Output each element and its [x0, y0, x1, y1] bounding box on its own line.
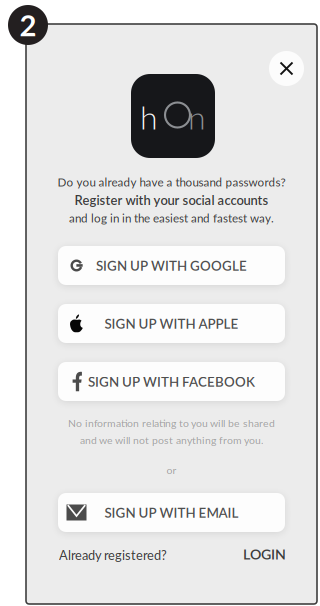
staticText: and we will not post anything from you.	[80, 434, 263, 446]
button[interactable]: SIGN UP WITH FACEBOOK	[58, 362, 285, 401]
staticText: h	[140, 98, 158, 136]
button[interactable]: Already registered?	[59, 546, 179, 564]
staticText: or	[166, 464, 176, 476]
staticText: Do you already have a thousand passwords…	[57, 175, 285, 189]
staticText: LOGIN	[243, 545, 286, 562]
staticText: and log in in the easiest and fastest wa…	[69, 211, 274, 225]
button[interactable]: Close	[269, 51, 304, 86]
button[interactable]: LOGIN	[226, 545, 286, 563]
staticText: n	[188, 98, 206, 136]
staticText: SIGN UP WITH APPLE	[104, 315, 238, 331]
staticText: SIGN UP WITH FACEBOOK	[88, 373, 255, 389]
staticText: SIGN UP WITH GOOGLE	[96, 257, 247, 273]
staticText: SIGN UP WITH EMAIL	[104, 504, 238, 520]
staticText: 2	[19, 7, 36, 43]
button[interactable]: SIGN UP WITH GOOGLE	[58, 246, 285, 285]
staticText: No information relating to you will be s…	[68, 417, 275, 429]
button[interactable]: SIGN UP WITH EMAIL	[58, 493, 285, 532]
staticText: Register with your social accounts	[74, 192, 268, 208]
staticText: Already registered?	[59, 547, 167, 563]
button[interactable]: SIGN UP WITH APPLE	[58, 304, 285, 343]
